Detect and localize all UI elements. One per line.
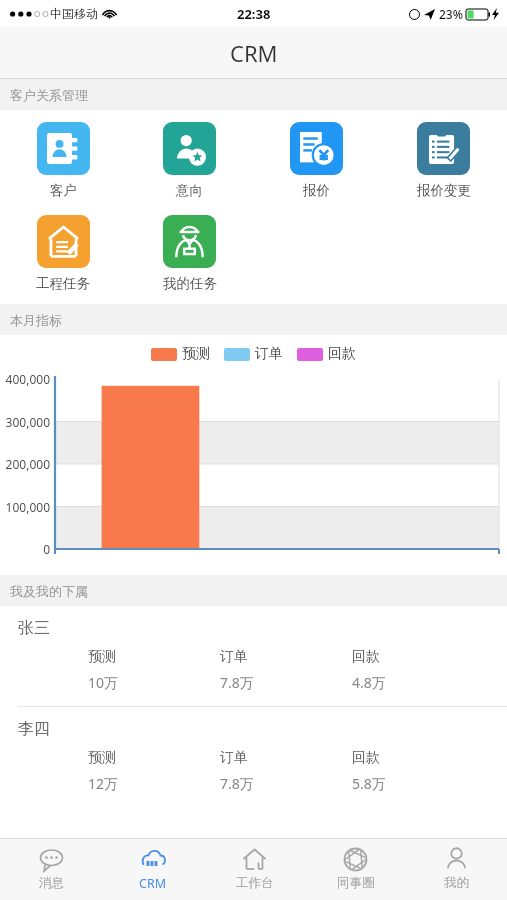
staticText: 客户关系管理: [10, 87, 88, 103]
button[interactable]: 报价变更: [380, 118, 507, 203]
staticText: 4.8万: [352, 673, 386, 692]
staticText: 我的: [444, 875, 469, 891]
button[interactable]: 消息: [0, 838, 102, 900]
staticText: 我及我的下属: [10, 583, 88, 599]
staticText: 回款: [328, 345, 356, 363]
staticText: 100,000: [0, 499, 50, 515]
staticText: 订单: [220, 648, 248, 666]
button[interactable]: CRM: [102, 838, 204, 900]
button[interactable]: 工作台: [204, 838, 305, 900]
staticText: 预测: [182, 345, 210, 363]
staticText: CRM: [230, 38, 278, 68]
staticText: 订单: [220, 749, 248, 767]
staticText: 我的任务: [163, 275, 217, 292]
staticText: 客户: [50, 182, 77, 199]
staticText: 报价: [303, 182, 330, 199]
staticText: 意向: [176, 182, 203, 199]
staticText: 张三: [18, 618, 50, 638]
staticText: 订单: [255, 345, 283, 363]
staticText: 300,000: [0, 414, 50, 430]
button[interactable]: 李四: [0, 707, 507, 807]
staticText: 5.8万: [352, 774, 386, 793]
staticText: 中国移动: [50, 6, 98, 21]
staticText: 400,000: [0, 371, 50, 387]
staticText: 7.8万: [220, 673, 254, 692]
button[interactable]: 工程任务: [0, 211, 126, 296]
button[interactable]: 客户: [0, 118, 126, 203]
staticText: 同事圈: [337, 875, 375, 891]
button[interactable]: 报价: [253, 118, 380, 203]
button[interactable]: 意向: [126, 118, 253, 203]
button[interactable]: 我的: [406, 838, 507, 900]
staticText: 工程任务: [36, 275, 90, 292]
staticText: 预测: [88, 749, 116, 767]
button[interactable]: 张三: [0, 606, 507, 706]
staticText: 7.8万: [220, 774, 254, 793]
staticText: 报价变更: [417, 182, 471, 199]
staticText: 10万: [88, 673, 119, 692]
staticText: 0: [0, 541, 50, 557]
staticText: 回款: [352, 749, 380, 767]
staticText: 回款: [352, 648, 380, 666]
staticText: 本月指标: [10, 312, 62, 328]
staticText: 预测: [88, 648, 116, 666]
button[interactable]: 同事圈: [305, 838, 406, 900]
staticText: 李四: [18, 719, 50, 739]
staticText: 23%: [439, 6, 463, 22]
staticText: 工作台: [236, 875, 274, 891]
button[interactable]: 我的任务: [126, 211, 253, 296]
staticText: 22:38: [237, 5, 271, 23]
staticText: 12万: [88, 774, 119, 793]
staticText: CRM: [139, 875, 167, 892]
staticText: 200,000: [0, 456, 50, 472]
staticText: 消息: [39, 875, 64, 891]
